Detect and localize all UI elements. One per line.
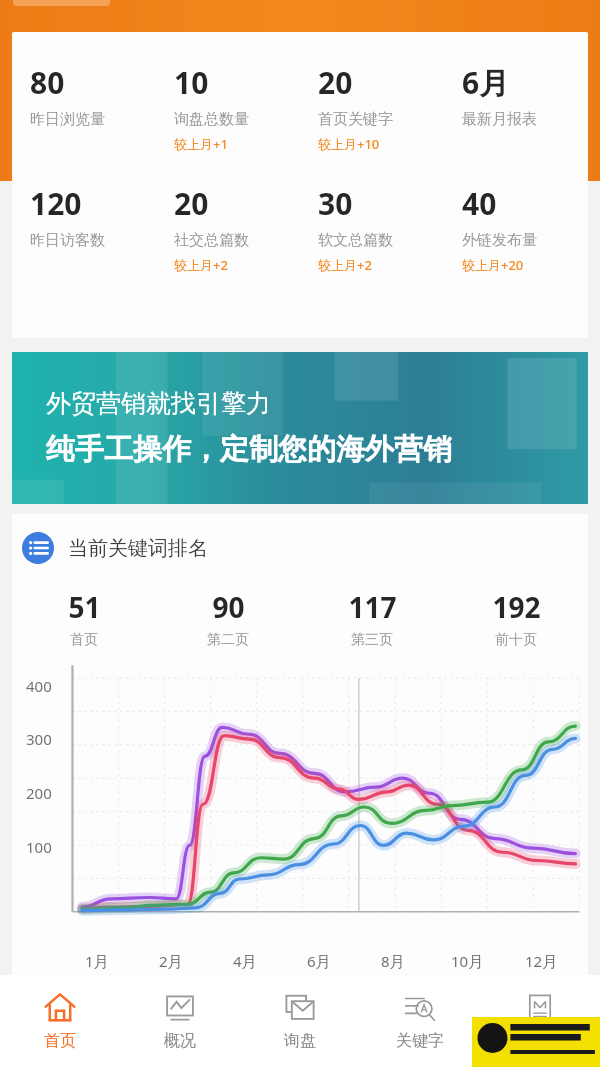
- staticText: 询盘: [284, 1031, 316, 1051]
- button[interactable]: 报表: [480, 975, 600, 1067]
- button[interactable]: 关键字: [360, 975, 480, 1067]
- staticText: 200: [26, 783, 52, 803]
- staticText: 纯手工操作，定制您的海外营销: [46, 431, 452, 468]
- button[interactable]: 6月: [462, 62, 588, 129]
- staticText: 昨日访客数: [30, 231, 105, 250]
- staticText: 昨日浏览量: [30, 110, 105, 129]
- staticText: 较上月+2: [174, 256, 228, 274]
- staticText: 117: [348, 588, 397, 626]
- staticText: 关键字: [396, 1031, 444, 1051]
- staticText: 较上月+2: [318, 256, 372, 274]
- staticText: 第二页: [207, 631, 249, 649]
- button[interactable]: 询盘: [240, 975, 360, 1067]
- button[interactable]: 外贸营销就找引擎力: [12, 352, 588, 504]
- staticText: 首页: [70, 631, 98, 649]
- staticText: 前十页: [495, 631, 537, 649]
- staticText: 询盘总数量: [174, 110, 249, 129]
- button[interactable]: 20: [174, 183, 300, 274]
- staticText: 40: [462, 183, 497, 224]
- staticText: 第三页: [351, 631, 393, 649]
- staticText: 社交总篇数: [174, 231, 249, 250]
- staticText: 51: [68, 588, 101, 626]
- staticText: 30: [318, 183, 353, 224]
- staticText: 12月: [525, 951, 558, 971]
- staticText: 1月: [85, 951, 109, 971]
- button[interactable]: 概况: [120, 975, 240, 1067]
- staticText: 120: [30, 183, 82, 224]
- staticText: 外贸营销就找引擎力: [46, 388, 271, 419]
- button[interactable]: 首页: [0, 975, 120, 1067]
- button[interactable]: 120: [30, 183, 156, 250]
- button[interactable]: 20: [318, 62, 444, 153]
- staticText: 首页: [44, 1031, 76, 1051]
- staticText: 10月: [451, 951, 484, 971]
- staticText: 6月: [462, 62, 510, 103]
- button[interactable]: 30: [318, 183, 444, 274]
- staticText: 100: [26, 837, 52, 857]
- staticText: 20: [318, 62, 353, 103]
- button[interactable]: 40: [462, 183, 588, 274]
- staticText: 192: [492, 588, 541, 626]
- staticText: 20: [174, 183, 209, 224]
- button[interactable]: 192: [444, 588, 588, 649]
- staticText: 4月: [233, 951, 257, 971]
- staticText: 最新月报表: [462, 110, 537, 129]
- button[interactable]: 10: [174, 62, 300, 153]
- staticText: 90: [212, 588, 245, 626]
- staticText: 较上月+10: [318, 135, 380, 153]
- staticText: 概况: [164, 1031, 196, 1051]
- staticText: 80: [30, 62, 65, 103]
- staticText: 较上月+20: [462, 256, 524, 274]
- staticText: 8月: [381, 951, 405, 971]
- button[interactable]: 51: [12, 588, 156, 649]
- button[interactable]: 90: [156, 588, 300, 649]
- staticText: 300: [26, 729, 52, 749]
- button[interactable]: 80: [30, 62, 156, 129]
- staticText: 当前关键词排名: [68, 536, 208, 561]
- staticText: 外链发布量: [462, 231, 537, 250]
- staticText: 2月: [159, 951, 183, 971]
- staticText: 软文总篇数: [318, 231, 393, 250]
- staticText: 10: [174, 62, 209, 103]
- button[interactable]: 117: [300, 588, 444, 649]
- staticText: 400: [26, 676, 52, 696]
- button[interactable]: Keyword ranking: [22, 532, 588, 564]
- staticText: 首页关键字: [318, 110, 393, 129]
- staticText: 较上月+1: [174, 135, 228, 153]
- other: Keyword ranking: [22, 532, 54, 564]
- staticText: 6月: [307, 951, 331, 971]
